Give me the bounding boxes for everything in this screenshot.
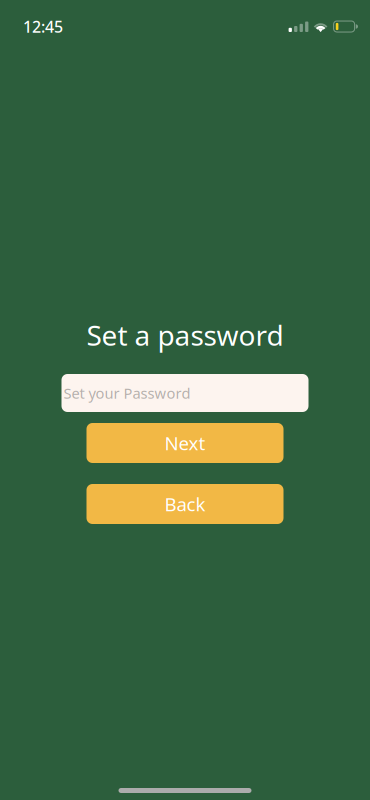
button[interactable]: Back [86,484,283,524]
button[interactable]: Set your Password [61,374,308,412]
staticText: Set a password [86,316,283,354]
staticText: Next [164,431,205,455]
staticText: Back [164,492,205,516]
button[interactable]: Next [86,423,283,463]
staticText: 12:45 [23,16,63,37]
staticText: Set your Password [63,383,190,403]
